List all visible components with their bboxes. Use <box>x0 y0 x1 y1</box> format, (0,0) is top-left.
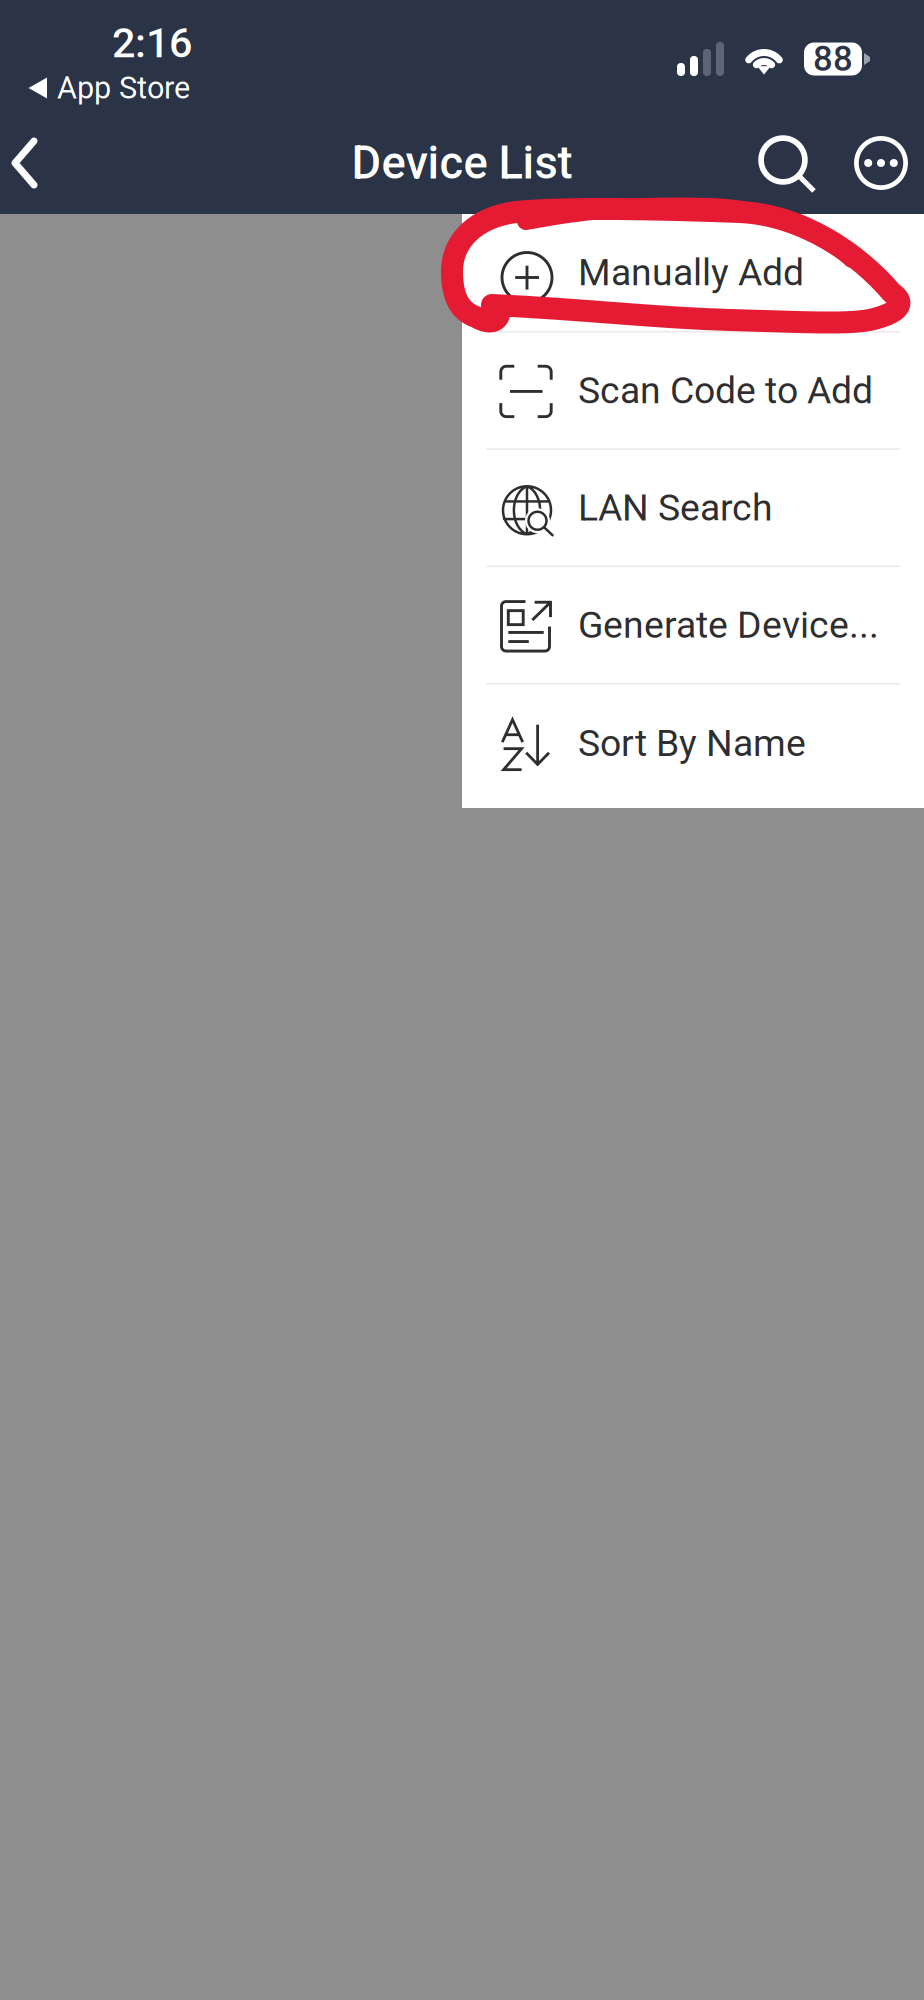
button[interactable]: Scan Code to Add <box>462 333 924 450</box>
staticText: LAN Search <box>578 486 773 530</box>
button[interactable]: Manually Add <box>462 214 924 333</box>
button[interactable]: More options <box>846 112 916 214</box>
staticText: Generate Device... <box>578 603 879 647</box>
staticText: App Store <box>57 70 190 106</box>
staticText: Scan Code to Add <box>578 369 873 412</box>
button[interactable]: Sort By Name <box>462 684 924 802</box>
button[interactable]: Search <box>748 112 824 214</box>
staticText: 2:16 <box>112 19 192 67</box>
staticText: Device List <box>351 136 572 189</box>
button[interactable]: LAN Search <box>462 450 924 567</box>
staticText: Manually Add <box>578 251 804 294</box>
staticText: Sort By Name <box>578 721 806 765</box>
button[interactable]: App Store <box>0 0 165 34</box>
button[interactable]: Generate Device... <box>462 567 924 684</box>
staticText: 88 <box>813 39 853 79</box>
button[interactable]: Back <box>0 112 50 214</box>
